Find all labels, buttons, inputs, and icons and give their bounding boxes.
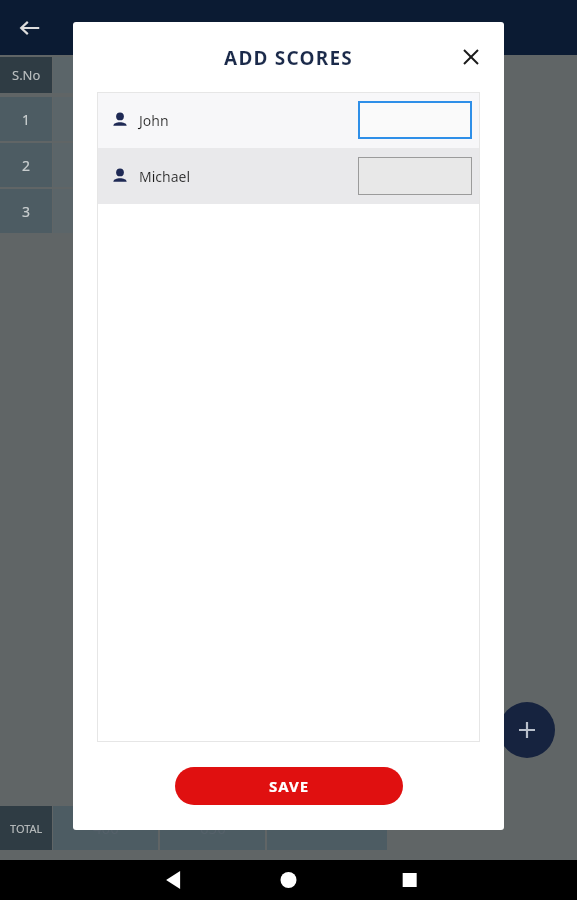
button[interactable] bbox=[358, 157, 472, 195]
staticText: SAVE bbox=[269, 776, 310, 796]
button[interactable]: Michael bbox=[97, 148, 480, 204]
staticText: 3 bbox=[22, 202, 31, 221]
staticText: 1 bbox=[22, 110, 31, 129]
staticText: 400 bbox=[93, 818, 119, 838]
staticText: John bbox=[139, 111, 169, 130]
button[interactable]: Close bbox=[452, 38, 490, 76]
button[interactable]: SAVE bbox=[175, 767, 403, 805]
staticText: S.No bbox=[12, 66, 41, 84]
staticText: TOTAL bbox=[10, 821, 43, 836]
button[interactable]: Back bbox=[10, 8, 50, 48]
button[interactable] bbox=[358, 101, 472, 139]
button[interactable]: Add bbox=[499, 702, 555, 758]
staticText: 2 bbox=[22, 156, 31, 175]
staticText: ADD SCORES bbox=[224, 45, 353, 71]
staticText: Michael bbox=[139, 167, 191, 186]
button[interactable]: John bbox=[97, 92, 480, 148]
staticText: 650 bbox=[200, 818, 226, 838]
